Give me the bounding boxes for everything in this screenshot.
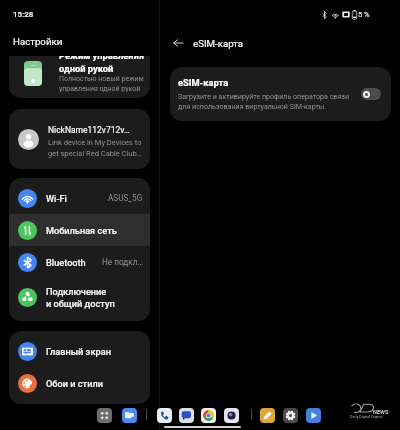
button[interactable]: Messages [179, 408, 194, 423]
button[interactable]: Bluetooth [9, 246, 150, 278]
button[interactable]: Wi-Fi [9, 182, 150, 214]
button[interactable]: Мобильная сеть [9, 214, 150, 246]
staticText: Bluetooth [46, 257, 86, 268]
staticText: Полностью новый режим [59, 75, 144, 83]
button[interactable]: Back [167, 32, 189, 54]
staticText: NickName112v712v… [48, 125, 130, 135]
staticText: eSIM-карта [193, 38, 244, 49]
button[interactable]: Toggle eSIM [361, 88, 381, 100]
button[interactable]: Camera [224, 408, 239, 423]
staticText: Не подкл… [102, 257, 143, 267]
button[interactable]: Play Store [306, 408, 321, 423]
staticText: для использования виртуальной SIM-карты. [178, 102, 327, 110]
button[interactable]: Режим управления [9, 56, 150, 98]
button[interactable]: Главный экран [9, 335, 150, 367]
staticText: NEWS [373, 409, 389, 416]
button[interactable]: Settings [283, 408, 298, 423]
staticText: Загрузите и активируйте профиль оператор… [178, 92, 349, 100]
staticText: Настройки [13, 36, 63, 47]
button[interactable]: Notes [260, 408, 275, 423]
button[interactable]: eSIM-карта [170, 67, 391, 121]
button[interactable]: Подключение [9, 278, 150, 317]
button[interactable]: Phone [157, 408, 172, 423]
staticText: ASUS_5G [108, 193, 143, 203]
staticText: и общий доступ [46, 298, 115, 309]
staticText: Обои и стили [46, 378, 103, 389]
staticText: 15:28 [13, 10, 34, 19]
staticText: Мобильная сеть [46, 225, 117, 236]
staticText: Режим управления [59, 56, 144, 61]
staticText: Главный экран [46, 346, 111, 357]
button[interactable]: Обои и стили [9, 367, 150, 399]
button[interactable]: NickName112v712v… [9, 109, 150, 169]
staticText: 5 % [358, 10, 370, 19]
staticText: eSIM-карта [178, 77, 229, 88]
staticText: управления одной рукой [59, 85, 141, 92]
staticText: get special Red Cable Club… [48, 149, 142, 158]
staticText: Wi-Fi [46, 193, 67, 204]
staticText: одной рукой [59, 63, 114, 74]
staticText: Link device in My Devices to [48, 138, 142, 147]
button[interactable]: Apps [97, 408, 112, 423]
button[interactable]: Chrome [201, 408, 216, 423]
button[interactable]: Files [122, 408, 137, 423]
staticText: Daily Digital Digest [350, 414, 383, 418]
staticText: Подключение [46, 286, 107, 297]
